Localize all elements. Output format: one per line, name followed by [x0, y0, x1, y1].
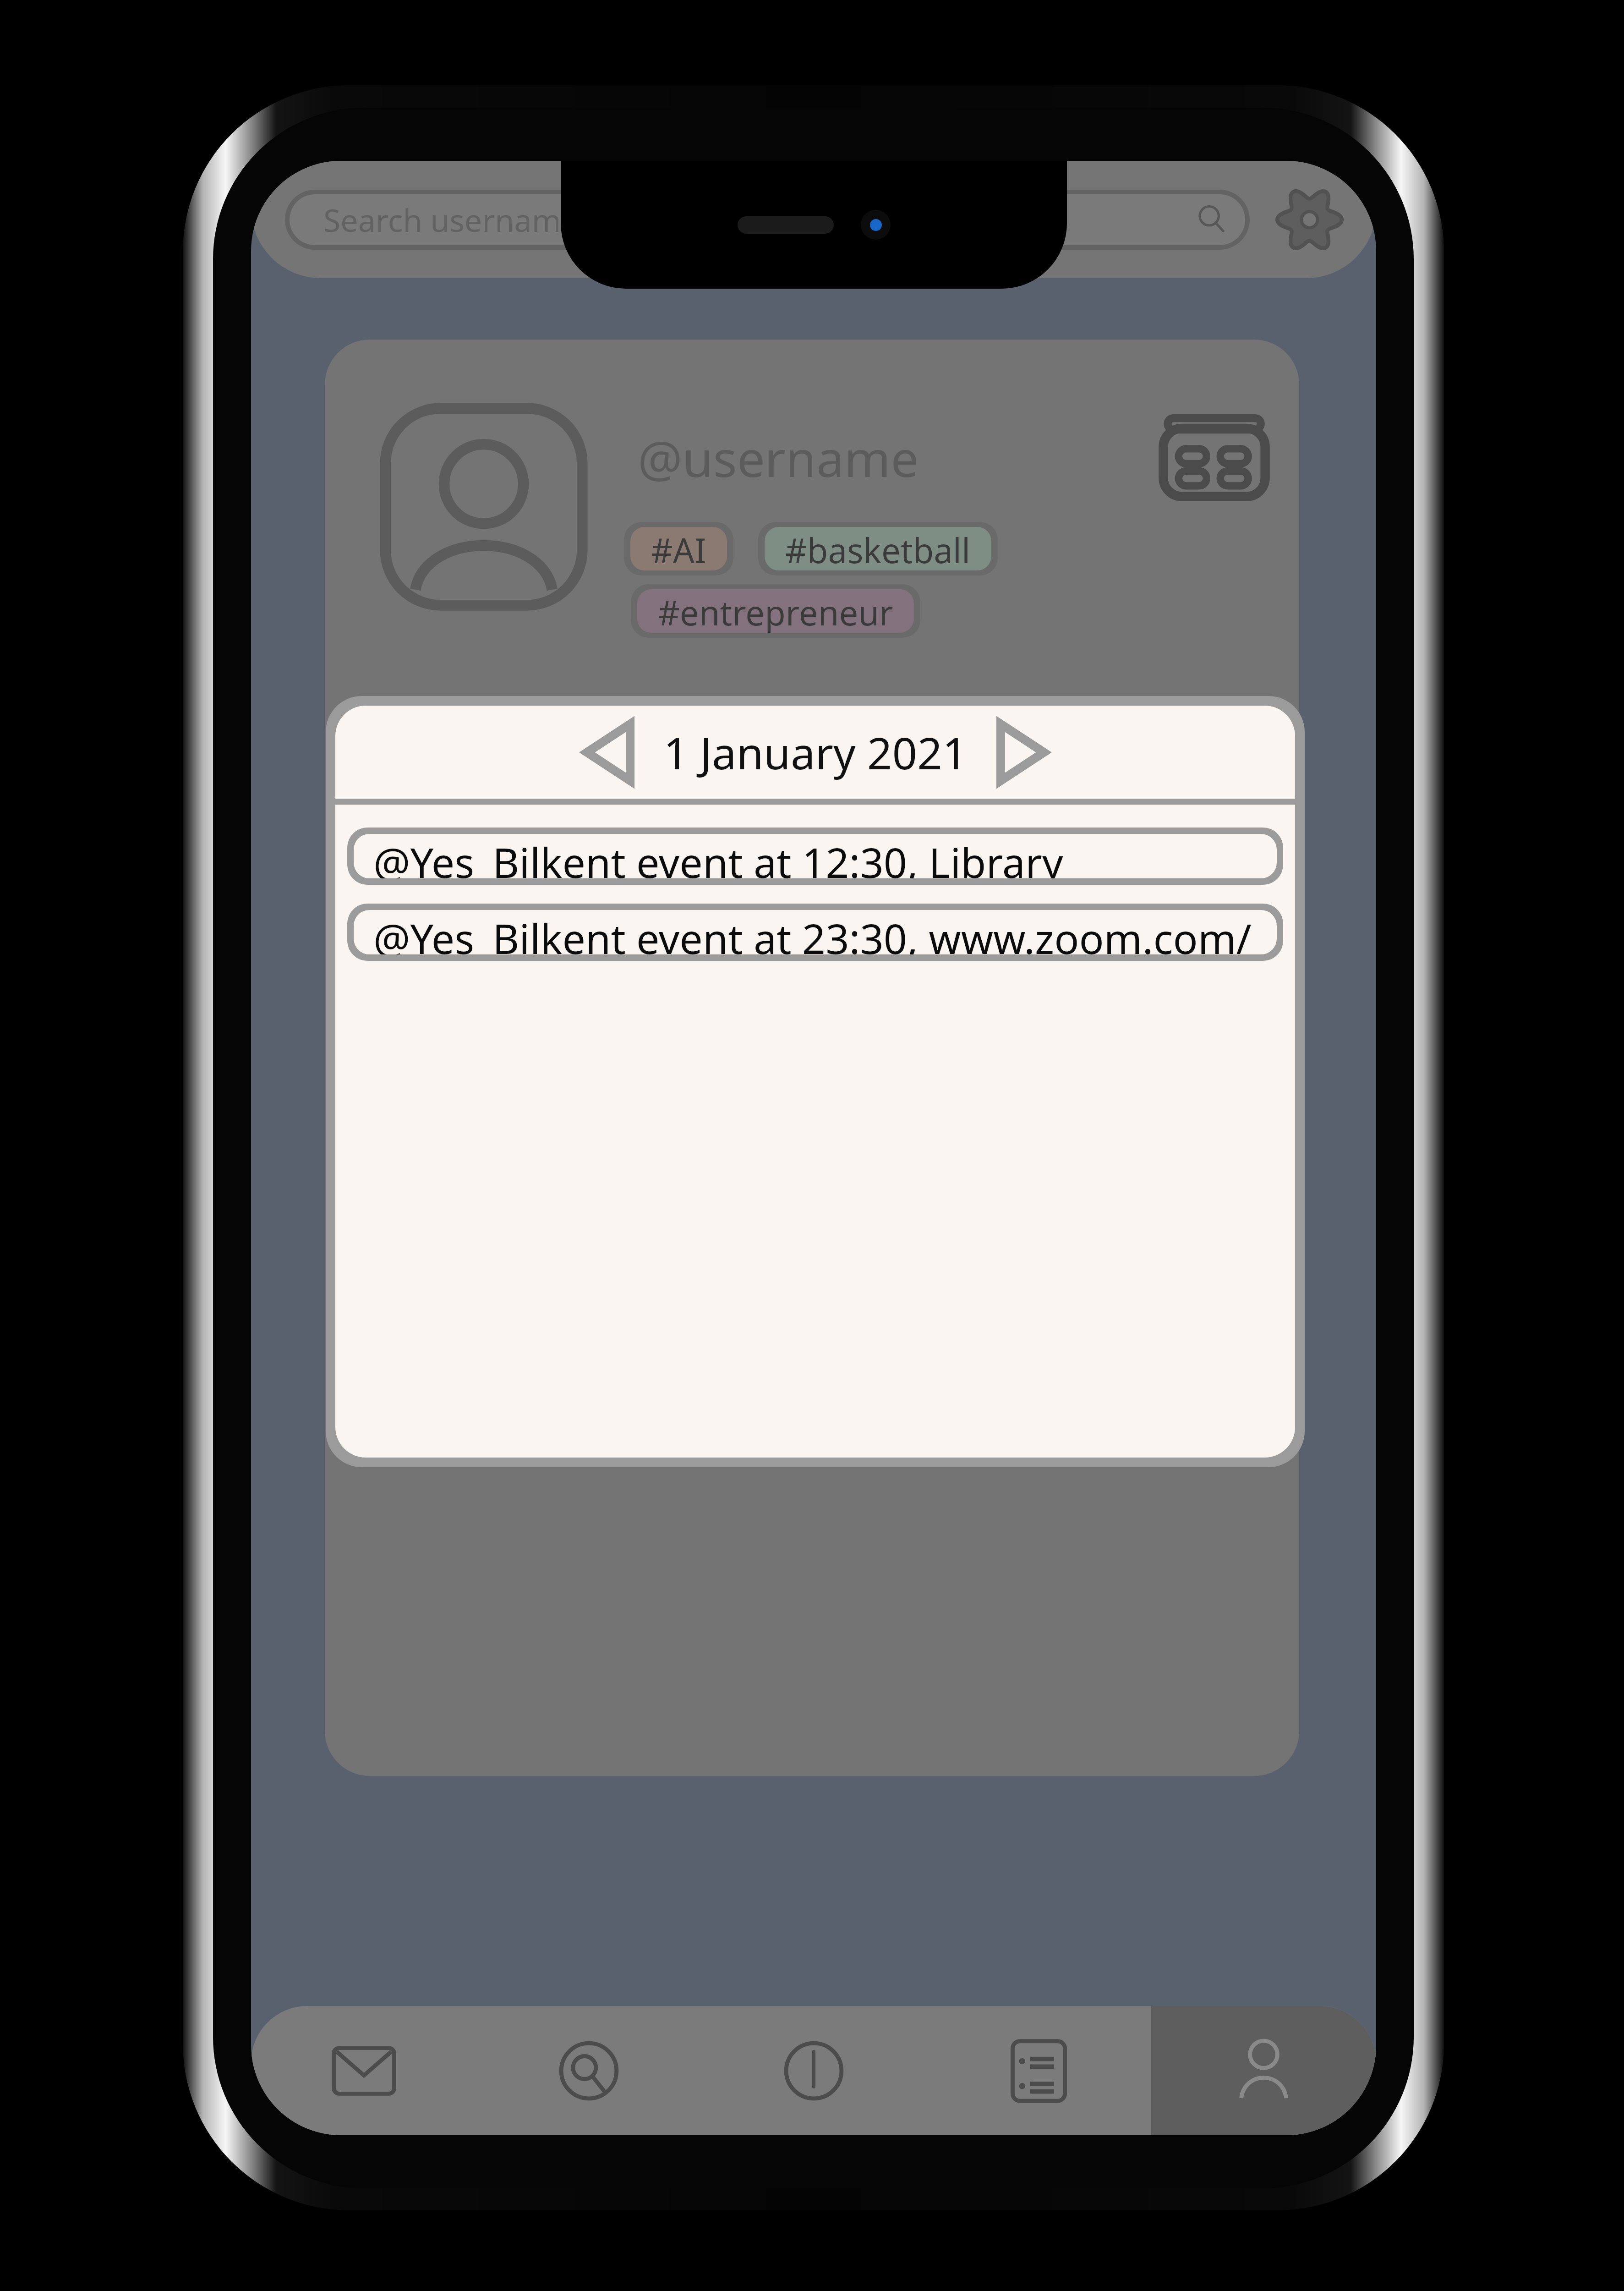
button[interactable]: Messages	[251, 2006, 476, 2135]
staticText: @Yes_Bilkent event at 23:30, www.zoom.co…	[373, 910, 1257, 954]
staticText: 1 January 2021	[663, 723, 968, 782]
button[interactable]: #AI	[630, 527, 727, 570]
button[interactable]: @Yes_Bilkent event at 23:30, www.zoom.co…	[354, 910, 1277, 954]
button[interactable]: Search	[476, 2006, 701, 2135]
button[interactable]: Search username	[290, 194, 1245, 245]
button[interactable]: @Yes_Bilkent event at 12:30, Library	[354, 834, 1277, 878]
button[interactable]: Settings	[1274, 185, 1345, 255]
button[interactable]: Next day	[987, 719, 1056, 785]
staticText: @Yes_Bilkent event at 12:30, Library	[373, 834, 1063, 878]
button[interactable]: Calendar	[1159, 415, 1269, 500]
staticText: #basketball	[785, 527, 971, 570]
button[interactable]: #basketball	[765, 527, 991, 570]
staticText: @username	[638, 424, 919, 492]
button[interactable]: Search	[1185, 194, 1245, 245]
button[interactable]: Feed	[926, 2006, 1151, 2135]
staticText: #entrepreneur	[658, 589, 893, 633]
button[interactable]: Profile	[1151, 2006, 1376, 2135]
button[interactable]: #entrepreneur	[637, 589, 914, 633]
button[interactable]: Profile photo	[364, 387, 604, 627]
button[interactable]: Info	[701, 2006, 926, 2135]
button[interactable]: Previous day	[574, 719, 644, 785]
staticText: Search username	[323, 198, 579, 241]
staticText: #AI	[651, 527, 706, 570]
